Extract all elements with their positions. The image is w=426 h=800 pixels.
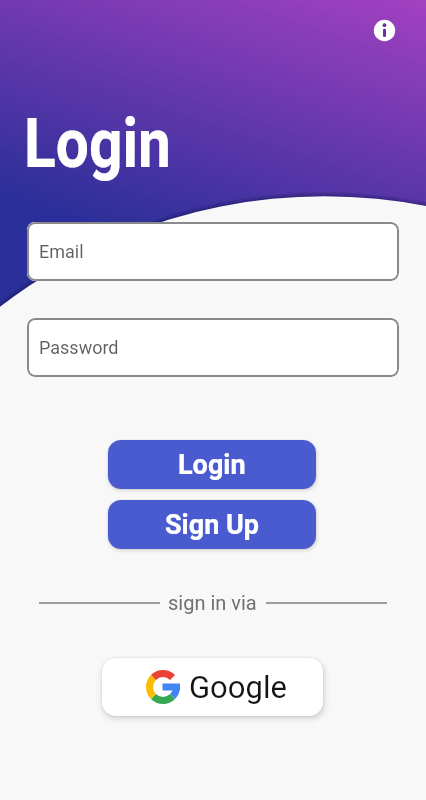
staticText: Login [178,449,246,481]
staticText: Login [24,103,171,184]
staticText: Email [39,241,84,262]
staticText: sign in via [168,591,257,614]
button[interactable]: Email [27,222,399,281]
staticText: Password [39,337,119,358]
button[interactable] [368,14,401,47]
staticText: Sign Up [165,509,259,541]
button[interactable]: Login [108,440,316,489]
button[interactable]: Password [27,318,399,377]
button[interactable]: Sign Up [108,500,316,549]
staticText: Google [189,669,287,705]
button[interactable]: Google [102,658,323,716]
